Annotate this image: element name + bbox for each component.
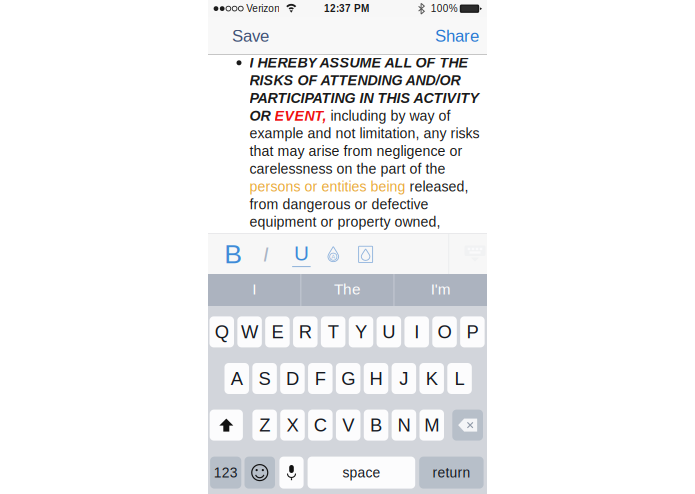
staticText: B — [224, 239, 242, 269]
button[interactable]: I — [254, 234, 278, 275]
staticText: EVENT, — [274, 108, 326, 124]
staticText: I — [252, 281, 256, 298]
button[interactable]: F — [308, 363, 333, 394]
button[interactable]: Text color — [320, 234, 346, 275]
staticText: space — [342, 465, 380, 480]
button[interactable]: B — [218, 233, 248, 274]
button[interactable]: N — [392, 410, 416, 441]
staticText: released, — [405, 179, 468, 194]
button[interactable]: X — [280, 410, 305, 441]
button[interactable]: Y — [349, 316, 373, 347]
button[interactable]: Save — [225, 18, 276, 54]
staticText: Y — [355, 322, 367, 342]
button[interactable]: Q — [209, 316, 234, 347]
staticText: 12:37 PM — [324, 3, 369, 14]
staticText: V — [342, 415, 354, 435]
button[interactable]: Z — [252, 410, 277, 441]
button[interactable]: return — [419, 457, 484, 489]
staticText: B — [370, 415, 382, 435]
staticText: Save — [232, 27, 269, 45]
button[interactable]: R — [293, 316, 318, 347]
staticText: I — [414, 322, 419, 342]
button[interactable]: 123 — [210, 457, 241, 489]
staticText: G — [341, 368, 355, 389]
button[interactable]: V — [336, 410, 360, 441]
staticText: example and not limitation, any risks — [249, 126, 479, 141]
staticText: K — [426, 368, 438, 389]
button[interactable]: M — [419, 410, 444, 441]
staticText: L — [455, 368, 465, 389]
button[interactable]: S — [252, 363, 277, 394]
button[interactable]: C — [308, 410, 333, 441]
button[interactable]: I — [404, 316, 429, 347]
button[interactable]: J — [392, 363, 416, 394]
staticText: O — [438, 322, 452, 342]
staticText: Verizon — [246, 3, 280, 14]
staticText: PARTICIPATING IN THIS ACTIVITY — [249, 90, 479, 106]
staticText: Q — [215, 322, 229, 342]
button[interactable]: U — [286, 234, 316, 275]
staticText: N — [397, 415, 410, 435]
staticText: that may arise from negligence or — [249, 143, 462, 159]
button[interactable]: L — [447, 363, 472, 394]
button[interactable]: P — [460, 316, 485, 347]
staticText: OR — [249, 108, 274, 124]
button[interactable]: G — [336, 363, 360, 394]
staticText: F — [315, 368, 326, 389]
button[interactable]: A — [224, 363, 249, 394]
button[interactable]: O — [432, 316, 457, 347]
staticText: P — [466, 322, 478, 342]
button[interactable]: Dictate — [279, 457, 304, 489]
staticText: I'm — [431, 281, 451, 298]
button[interactable]: Share — [428, 18, 486, 54]
button[interactable]: Shift — [210, 410, 243, 441]
staticText: T — [328, 322, 339, 342]
button[interactable]: W — [237, 316, 262, 347]
button[interactable]: B — [364, 410, 388, 441]
staticText: H — [369, 368, 382, 389]
staticText: R — [299, 322, 312, 342]
button[interactable]: Emoji — [244, 457, 275, 489]
button[interactable]: Delete — [452, 410, 483, 441]
staticText: from dangerous or defective — [249, 196, 428, 212]
staticText: C — [314, 415, 327, 435]
staticText: S — [259, 368, 271, 389]
button[interactable]: T — [321, 316, 345, 347]
staticText: U — [382, 322, 395, 342]
staticText: carelessness on the part of the — [249, 161, 445, 177]
button[interactable]: I'm — [394, 273, 487, 305]
button[interactable]: Highlight color — [353, 234, 379, 275]
staticText: A — [331, 253, 335, 260]
staticText: Share — [435, 27, 479, 45]
staticText: M — [424, 415, 439, 435]
staticText: J — [399, 368, 408, 389]
staticText: X — [286, 415, 298, 435]
button[interactable]: D — [280, 363, 305, 394]
staticText: The — [334, 281, 361, 298]
staticText: return — [432, 465, 470, 480]
staticText: equipment or property owned, — [249, 214, 440, 230]
staticText: 100% — [431, 3, 458, 14]
staticText: W — [241, 322, 258, 342]
button[interactable]: K — [419, 363, 444, 394]
button[interactable]: The — [301, 273, 393, 305]
button[interactable]: Hide keyboard — [460, 233, 490, 274]
staticText: Z — [259, 415, 270, 435]
staticText: including by way of — [326, 108, 450, 124]
staticText: D — [286, 368, 299, 389]
staticText: U — [294, 242, 309, 265]
staticText: E — [271, 322, 283, 342]
button[interactable]: E — [265, 316, 290, 347]
staticText: RISKS OF ATTENDING AND/OR — [249, 72, 460, 88]
button[interactable]: H — [364, 363, 388, 394]
staticText: 123 — [214, 465, 238, 480]
button[interactable]: space — [308, 457, 415, 489]
button[interactable]: U — [377, 316, 401, 347]
staticText: persons or entities being — [249, 179, 405, 194]
staticText: A — [231, 368, 243, 389]
staticText: I — [263, 243, 269, 266]
button[interactable]: I — [208, 273, 300, 305]
staticText: I HEREBY ASSUME ALL OF THE — [249, 55, 468, 71]
